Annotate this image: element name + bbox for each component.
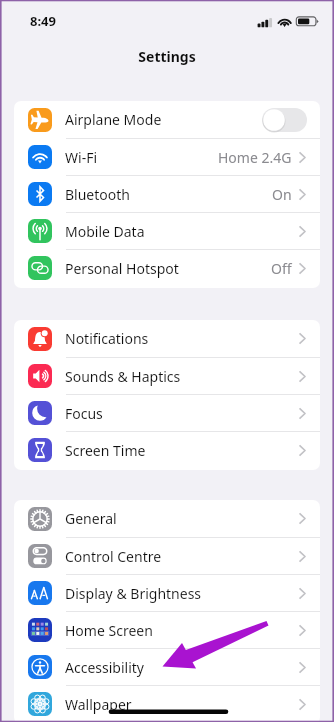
button[interactable]: Airplane Mode toggle [262,108,307,132]
staticText: Notifications [65,329,149,348]
staticText: General [65,509,117,528]
button[interactable]: Wallpaper [14,686,320,722]
button[interactable]: Sounds & Haptics [14,358,320,394]
staticText: Settings [138,47,196,66]
staticText: Mobile Data [65,222,145,241]
staticText: Off [271,259,292,278]
button[interactable]: Airplane Mode [14,101,320,138]
button[interactable]: Home Screen [14,612,320,648]
staticText: Focus [65,404,103,423]
staticText: Home Screen [65,621,153,640]
staticText: Bluetooth [65,185,130,204]
staticText: Wallpaper [65,695,132,714]
button[interactable]: Wi-Fi [14,139,320,175]
button[interactable]: Display & Brightness [14,575,320,611]
staticText: Display & Brightness [65,584,202,603]
button[interactable]: General [14,500,320,537]
button[interactable]: Control Centre [14,538,320,574]
button[interactable]: Notifications [14,320,320,357]
staticText: Personal Hotspot [65,259,179,278]
staticText: Home 2.4G [218,148,292,167]
button[interactable]: Screen Time [14,432,320,468]
staticText: Wi-Fi [65,148,98,167]
staticText: Accessibility [65,658,144,677]
staticText: 8:49 [30,12,56,30]
button[interactable]: Mobile Data [14,213,320,249]
staticText: Airplane Mode [65,110,162,129]
button[interactable]: Bluetooth [14,176,320,212]
button[interactable]: Personal Hotspot [14,250,320,286]
button[interactable]: Focus [14,395,320,431]
staticText: Control Centre [65,547,162,566]
button[interactable]: Accessibility [14,649,320,685]
staticText: Sounds & Haptics [65,367,181,386]
staticText: Screen Time [65,441,146,460]
staticText: On [272,185,292,204]
